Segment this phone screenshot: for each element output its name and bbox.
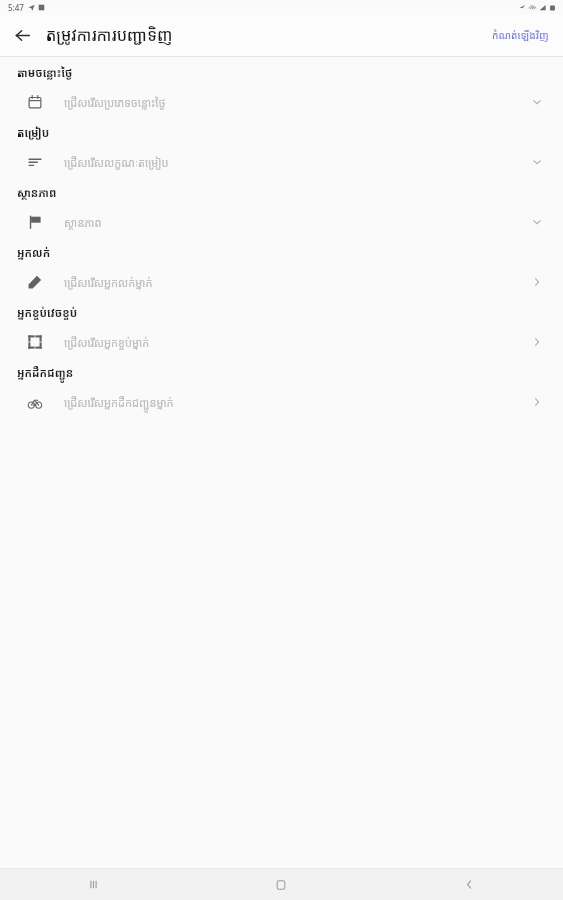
staticText: តាមចន្លោះថ្ងៃ: [17, 65, 73, 80]
staticText: ជ្រើសរើសលក្ខណៈតម្រៀប: [64, 155, 523, 170]
button[interactable]: ជ្រើសរើសអ្នកខ្ចប់ម្នាក់: [0, 327, 563, 357]
staticText: ស្ថានភាព: [64, 215, 523, 230]
staticText: ជ្រើសរើសអ្នកដឹកជញ្ជូនម្នាក់: [64, 395, 523, 410]
staticText: ជ្រើសរើសប្រភេទចន្លោះថ្ងៃ: [64, 95, 523, 110]
button[interactable]: ជ្រើសរើសអ្នកលក់ម្នាក់: [0, 267, 563, 297]
button[interactable]: ជ្រើសរើសអ្នកដឹកជញ្ជូនម្នាក់: [0, 387, 563, 417]
staticText: កំណត់ឡើងវិញ: [492, 28, 549, 42]
button[interactable]: Home: [187, 869, 375, 900]
button[interactable]: Back: [375, 869, 563, 900]
staticText: តម្រៀប: [17, 125, 50, 140]
staticText: ស្ថានភាព: [17, 185, 57, 200]
staticText: អ្នកលក់: [17, 245, 51, 260]
button[interactable]: កំណត់ឡើងវិញ: [490, 22, 551, 48]
staticText: តម្រូវការការបញ្ជាទិញ: [46, 24, 490, 46]
staticText: 5:47: [8, 2, 24, 13]
button[interactable]: Recents: [0, 869, 187, 900]
staticText: អ្នកដឹកជញ្ជូន: [17, 365, 74, 380]
staticText: អ្នកខ្ចប់វេចខ្ចប់: [17, 305, 78, 320]
staticText: ជ្រើសរើសអ្នកលក់ម្នាក់: [64, 275, 523, 290]
button[interactable]: Back: [6, 19, 38, 51]
button[interactable]: ស្ថានភាព: [0, 207, 563, 237]
staticText: ជ្រើសរើសអ្នកខ្ចប់ម្នាក់: [64, 335, 523, 350]
button[interactable]: ជ្រើសរើសលក្ខណៈតម្រៀប: [0, 147, 563, 177]
button[interactable]: ជ្រើសរើសប្រភេទចន្លោះថ្ងៃ: [0, 87, 563, 117]
